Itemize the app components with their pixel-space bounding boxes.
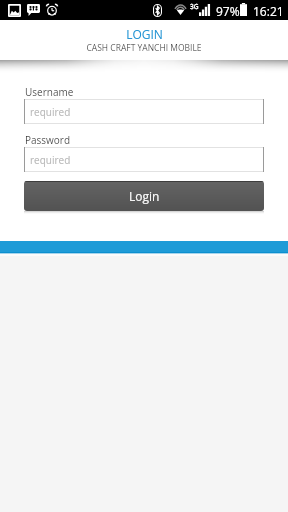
staticText: required — [30, 153, 71, 167]
staticText: 3G — [190, 2, 199, 11]
button[interactable]: Login — [24, 181, 264, 211]
staticText: required — [30, 105, 71, 119]
staticText: CASH CRAFT YANCHI MOBILE — [86, 42, 202, 54]
staticText: Login — [129, 188, 160, 204]
staticText: 97% — [216, 3, 240, 19]
staticText: 16:21 — [253, 3, 284, 19]
staticText: Password — [25, 133, 71, 147]
button[interactable]: Password input field — [24, 147, 264, 172]
button[interactable]: Username input field — [24, 99, 264, 124]
staticText: Username — [25, 85, 74, 99]
staticText: LOGIN — [126, 26, 163, 42]
